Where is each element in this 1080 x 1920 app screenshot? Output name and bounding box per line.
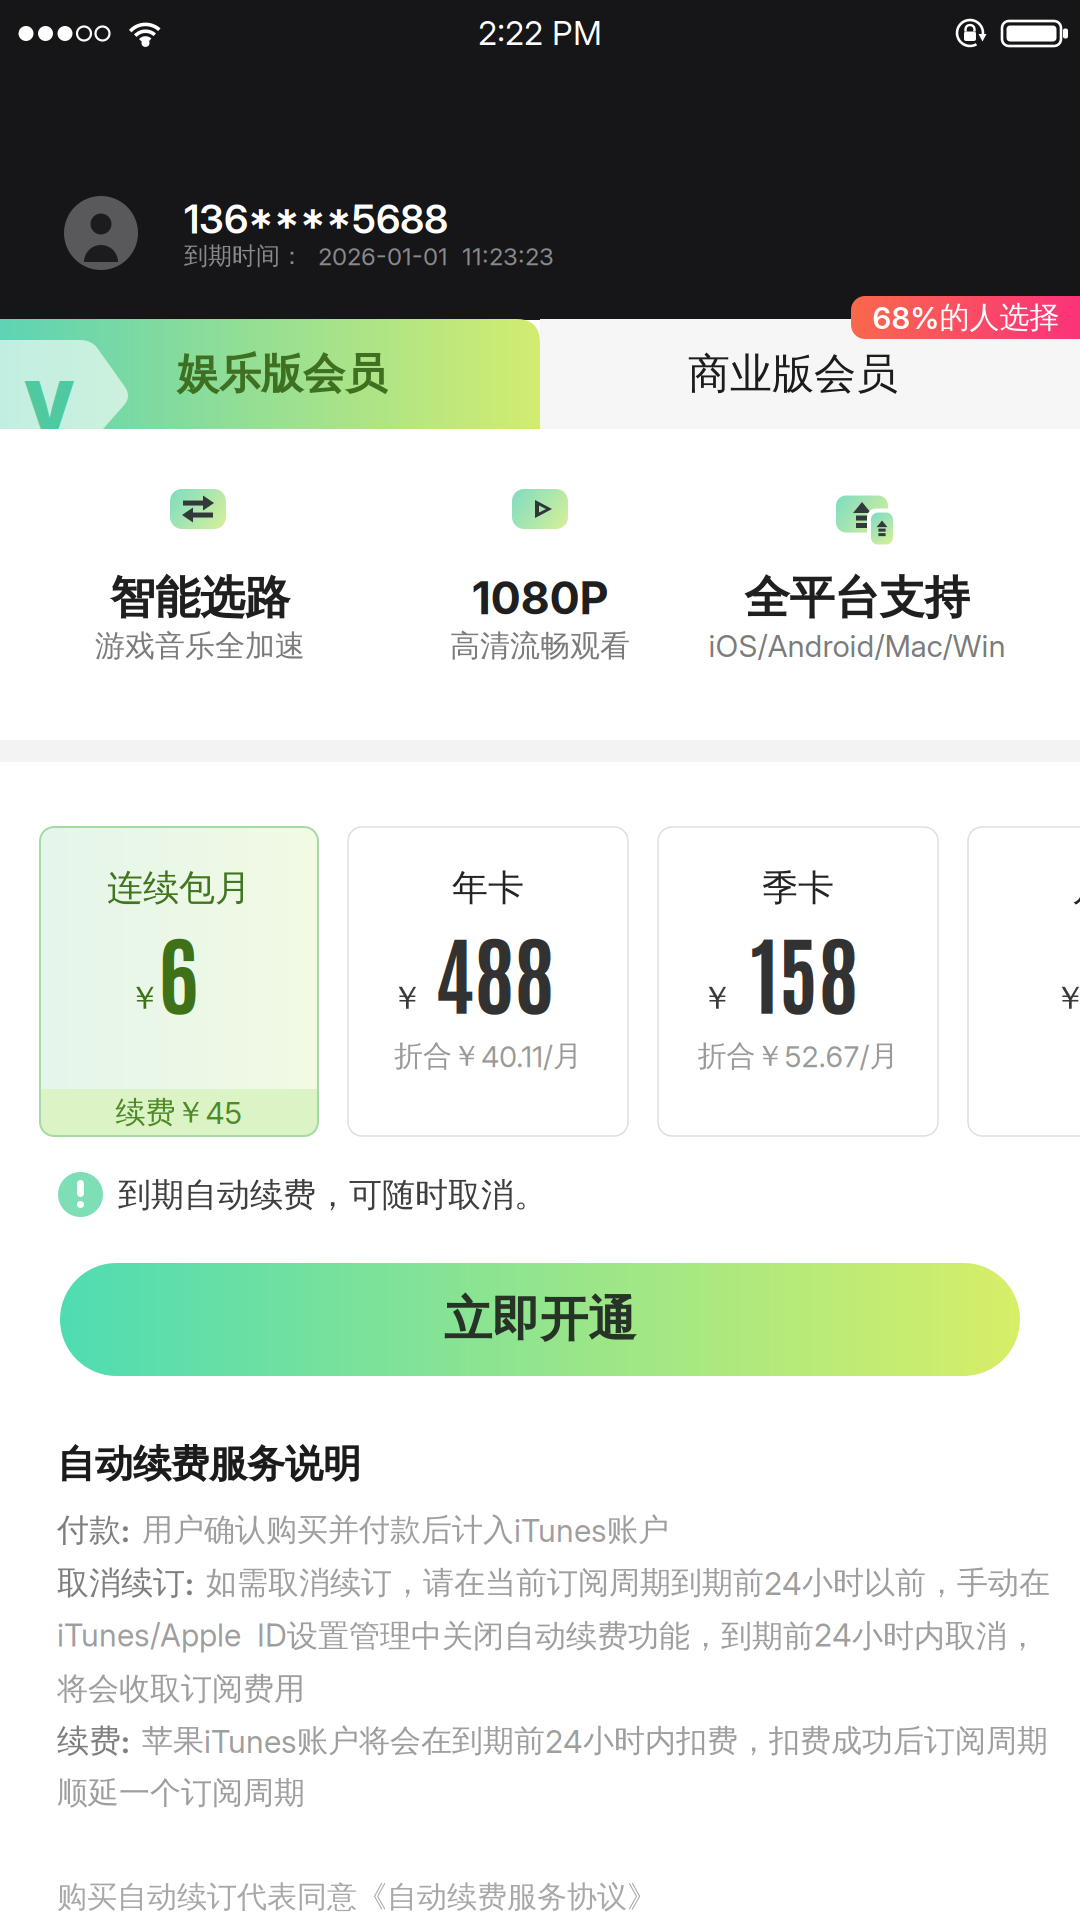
staticText: iTunes/Apple ID设置管理中关闭自动续费功能，到期前24小时内取消， [57, 1616, 1038, 1656]
staticText: 续费: [57, 1721, 130, 1761]
staticText: 立即开通 [444, 1289, 636, 1350]
staticText: 购买自动续订代表同意《自动续费服务协议》 [57, 1878, 657, 1916]
staticText: 到期时间： 2026-01-01 11:23:23 [184, 241, 554, 271]
button[interactable]: 商业版会员 [540, 319, 1080, 429]
staticText: 取消续订: [57, 1563, 194, 1603]
staticText: 付款: [57, 1510, 130, 1550]
staticText: 1080P [471, 571, 608, 625]
staticText: V [23, 365, 75, 445]
staticText: ￥ [391, 978, 423, 1018]
button[interactable]: 立即开通 [60, 1263, 1020, 1376]
staticText: iOS/Android/Mac/Win [708, 628, 1005, 664]
staticText: 娱乐版会员 [177, 347, 387, 400]
staticText: 连续包月 [107, 865, 251, 911]
button[interactable]: 季卡 [658, 827, 938, 1136]
staticText: 136****5688 [184, 195, 448, 243]
staticText: 季卡 [762, 865, 834, 911]
staticText: ￥ [1054, 978, 1080, 1018]
staticText: 全平台支持 [744, 570, 969, 626]
staticText: 488 [434, 914, 554, 1026]
staticText: 到期自动续费，可随时取消。 [118, 1174, 547, 1216]
staticText: ￥ [701, 978, 733, 1018]
staticText: 智能选路 [110, 570, 290, 626]
button[interactable]: V [0, 319, 540, 429]
staticText: 158 [750, 914, 858, 1026]
staticText: 月卡 [1072, 865, 1080, 911]
button[interactable]: 年卡 [348, 827, 628, 1136]
button[interactable]: 月卡 [968, 827, 1080, 1136]
staticText: 用户确认购买并付款后计入iTunes账户 [142, 1510, 669, 1550]
staticText: 折合￥52.67/月 [697, 1038, 898, 1074]
staticText: 年卡 [452, 865, 524, 911]
staticText: ￥ [128, 978, 160, 1018]
staticText: 苹果iTunes账户将会在到期前24小时内扣费，扣费成功后订阅周期 [142, 1721, 1048, 1761]
staticText: 顺延一个订阅周期 [57, 1773, 305, 1813]
staticText: 折合￥40.11/月 [394, 1038, 582, 1074]
staticText: 续费￥45 [115, 1094, 242, 1131]
staticText: 自动续费服务说明 [57, 1440, 361, 1488]
staticText: 将会收取订阅费用 [57, 1669, 305, 1709]
button[interactable]: 购买自动续订代表同意《自动续费服务协议》 [57, 1878, 657, 1916]
staticText: 商业版会员 [688, 347, 898, 400]
staticText: 68%的人选择 [872, 299, 1059, 336]
staticText: 如需取消续订，请在当前订阅周期到期前24小时以前，手动在 [206, 1563, 1050, 1603]
staticText: 2:22 PM [478, 13, 602, 53]
button[interactable]: 连续包月 [40, 827, 318, 1136]
staticText: 游戏音乐全加速 [95, 627, 305, 665]
staticText: 6 [158, 914, 198, 1026]
staticText: 高清流畅观看 [450, 627, 630, 665]
